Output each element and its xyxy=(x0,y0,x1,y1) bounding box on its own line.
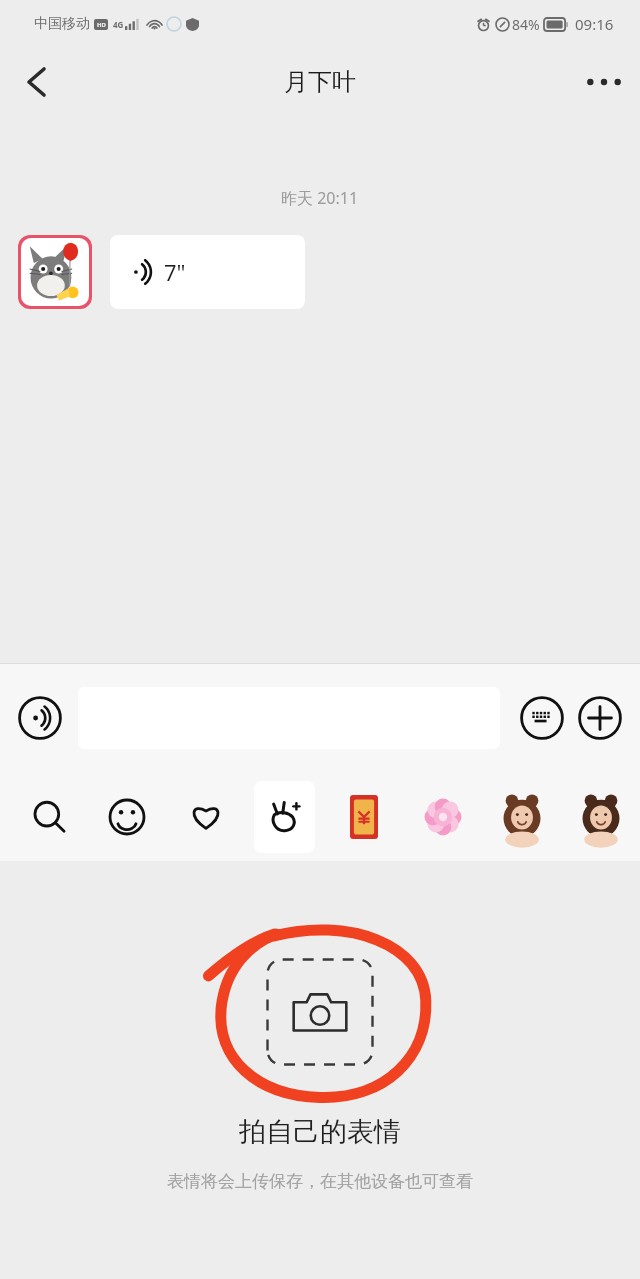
staticText: 月下叶 xyxy=(284,67,356,97)
button[interactable]: Take your own sticker xyxy=(266,958,374,1066)
staticText: 84% xyxy=(512,15,540,34)
button[interactable]: Back xyxy=(0,48,72,115)
button[interactable]: Voice input xyxy=(16,694,64,742)
button[interactable]: Avatar xyxy=(21,238,89,306)
button[interactable]: More xyxy=(576,694,624,742)
button[interactable]: Keyboard xyxy=(518,694,566,742)
staticText: 09:16 xyxy=(575,14,614,34)
button[interactable]: Sticker tab xyxy=(19,781,79,853)
button[interactable]: Sticker tab xyxy=(97,781,157,853)
button[interactable]: Sticker tab xyxy=(333,781,394,853)
button[interactable]: Sticker tab xyxy=(491,781,552,853)
staticText: 表情将会上传保存，在其他设备也可查看 xyxy=(167,1171,473,1192)
button[interactable]: Sticker tab xyxy=(175,781,236,853)
staticText: HD xyxy=(97,21,106,29)
staticText: 中国移动 xyxy=(34,15,90,33)
staticText: 昨天 20:11 xyxy=(281,187,359,209)
button[interactable]: Sticker tab xyxy=(412,781,473,853)
staticText: 4G xyxy=(113,19,124,30)
button[interactable]: 7" xyxy=(110,235,305,309)
button[interactable]: More options xyxy=(568,48,640,115)
button[interactable]: Sticker tab xyxy=(254,781,315,853)
button[interactable]: Sticker tab xyxy=(570,781,631,853)
staticText: 7" xyxy=(164,257,186,287)
staticText: 拍自己的表情 xyxy=(239,1115,401,1149)
